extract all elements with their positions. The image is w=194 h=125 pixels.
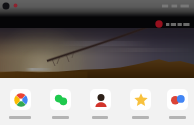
button[interactable]: Share target 4 — [120, 89, 160, 119]
button[interactable]: Share target 5 — [160, 89, 194, 119]
button[interactable]: Share target 2 — [40, 89, 80, 119]
button[interactable]: Share target 3 — [80, 89, 120, 119]
button[interactable]: Recording — [155, 20, 190, 28]
button[interactable]: Share target 1 — [0, 89, 40, 119]
